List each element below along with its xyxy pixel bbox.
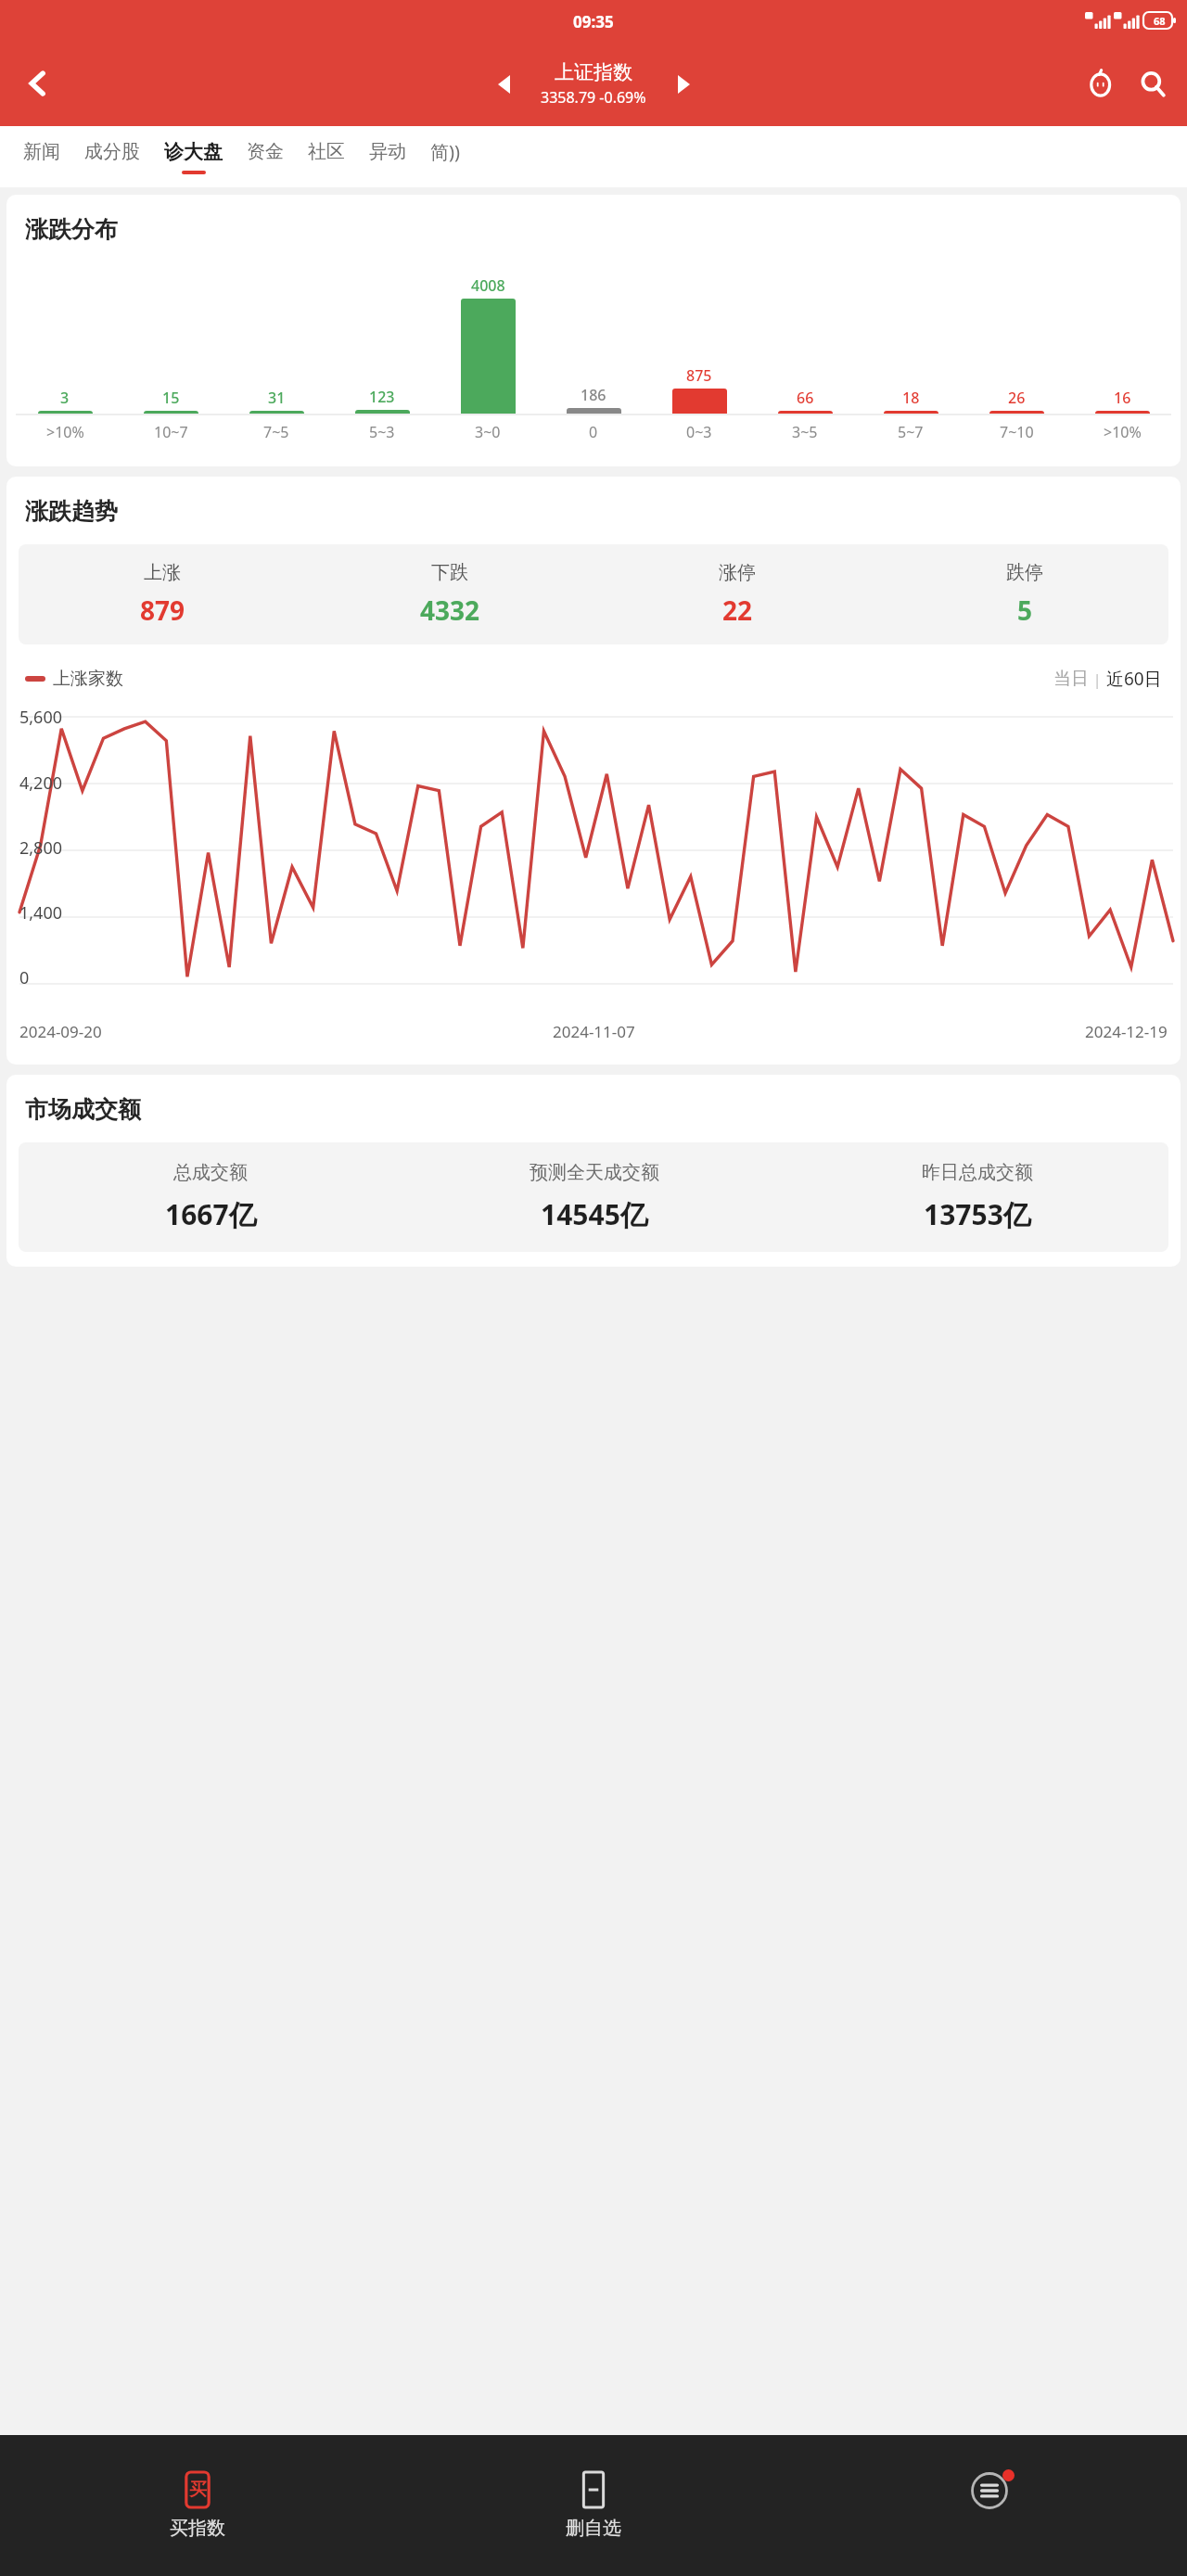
staticText: 社区 bbox=[308, 140, 345, 163]
staticText: >10% bbox=[1104, 422, 1142, 442]
staticText: 市场成交额 bbox=[25, 1095, 141, 1124]
button[interactable]: 新闻 bbox=[23, 126, 60, 187]
staticText: 预测全天成交额 bbox=[530, 1161, 659, 1184]
staticText: 4,200 bbox=[19, 772, 63, 795]
staticText: | bbox=[1089, 669, 1106, 690]
staticText: 上证指数 bbox=[555, 60, 632, 84]
staticText: 近60日 bbox=[1106, 667, 1162, 691]
staticText: 涨停 bbox=[719, 561, 756, 584]
staticText: 3 bbox=[60, 388, 70, 408]
staticText: 成分股 bbox=[84, 140, 140, 163]
button[interactable]: More bbox=[791, 2435, 1187, 2576]
staticText: 2024-11-07 bbox=[553, 1021, 635, 1042]
staticText: 22 bbox=[722, 593, 753, 628]
button[interactable]: 涨停 bbox=[593, 561, 881, 628]
button[interactable]: 上涨 bbox=[19, 561, 306, 628]
staticText: 14545亿 bbox=[541, 1195, 648, 1233]
button[interactable]: 异动 bbox=[369, 126, 406, 187]
staticText: 5,600 bbox=[19, 706, 63, 729]
button[interactable]: 资金 bbox=[247, 126, 284, 187]
button[interactable]: 删自选 bbox=[395, 2435, 791, 2576]
staticText: 涨跌分布 bbox=[25, 215, 118, 244]
staticText: 买指数 bbox=[170, 2517, 225, 2540]
staticText: 异动 bbox=[369, 140, 406, 163]
button[interactable]: 买指数 bbox=[0, 2435, 395, 2576]
staticText: 0 bbox=[589, 422, 598, 442]
staticText: 1667亿 bbox=[165, 1195, 257, 1233]
staticText: >10% bbox=[46, 422, 84, 442]
button[interactable]: 近60日 bbox=[1106, 667, 1162, 691]
staticText: 0~3 bbox=[686, 422, 712, 442]
staticText: 09:35 bbox=[573, 11, 614, 32]
staticText: 昨日总成交额 bbox=[922, 1161, 1033, 1184]
staticText: 上涨家数 bbox=[53, 668, 123, 690]
button[interactable]: Search bbox=[1130, 60, 1176, 107]
staticText: 诊大盘 bbox=[164, 140, 223, 164]
staticText: 跌停 bbox=[1006, 561, 1043, 584]
staticText: 4332 bbox=[420, 593, 480, 628]
button[interactable]: 简)) bbox=[430, 126, 460, 187]
staticText: 10~7 bbox=[154, 422, 188, 442]
staticText: 5 bbox=[1017, 593, 1033, 628]
button[interactable]: 成分股 bbox=[84, 126, 140, 187]
staticText: 879 bbox=[140, 593, 185, 628]
staticText: 资金 bbox=[247, 140, 284, 163]
staticText: 3~5 bbox=[792, 422, 818, 442]
button[interactable]: 跌停 bbox=[881, 561, 1168, 628]
staticText: 下跌 bbox=[431, 561, 468, 584]
staticText: 66 bbox=[797, 388, 814, 408]
staticText: 买 bbox=[189, 2479, 207, 2501]
button[interactable]: 当日 bbox=[1053, 668, 1089, 690]
staticText: 删自选 bbox=[566, 2517, 621, 2540]
staticText: 7~10 bbox=[1000, 422, 1034, 442]
button[interactable]: 社区 bbox=[308, 126, 345, 187]
staticText: 875 bbox=[686, 365, 712, 386]
staticText: 4008 bbox=[471, 275, 505, 296]
staticText: 16 bbox=[1114, 388, 1131, 408]
button[interactable]: Previous bbox=[483, 64, 524, 105]
button[interactable]: 预测全天成交额 bbox=[402, 1161, 785, 1233]
staticText: 7~5 bbox=[263, 422, 289, 442]
staticText: 简)) bbox=[430, 139, 460, 164]
button[interactable]: 诊大盘 bbox=[164, 126, 223, 187]
staticText: 新闻 bbox=[23, 140, 60, 163]
staticText: 18 bbox=[902, 388, 920, 408]
staticText: 15 bbox=[162, 388, 180, 408]
staticText: 123 bbox=[369, 387, 395, 407]
staticText: 31 bbox=[268, 388, 286, 408]
button[interactable]: Assistant bbox=[1078, 60, 1124, 107]
staticText: 3358.79 -0.69% bbox=[541, 87, 646, 108]
staticText: 0 bbox=[19, 966, 30, 989]
staticText: 13753亿 bbox=[924, 1195, 1031, 1233]
button[interactable]: Next bbox=[663, 64, 704, 105]
button[interactable]: Back bbox=[13, 58, 63, 108]
staticText: 5~7 bbox=[898, 422, 924, 442]
staticText: 3~0 bbox=[475, 422, 501, 442]
staticText: 5~3 bbox=[369, 422, 395, 442]
staticText: 2,800 bbox=[19, 836, 63, 860]
staticText: 26 bbox=[1008, 388, 1026, 408]
staticText: 2024-09-20 bbox=[19, 1021, 102, 1042]
button[interactable]: 总成交额 bbox=[19, 1161, 402, 1233]
button[interactable]: 昨日总成交额 bbox=[785, 1161, 1168, 1233]
staticText: 1,400 bbox=[19, 901, 63, 925]
staticText: 上涨 bbox=[144, 561, 181, 584]
staticText: 当日 bbox=[1053, 668, 1089, 690]
button[interactable]: 下跌 bbox=[306, 561, 593, 628]
staticText: 2024-12-19 bbox=[1085, 1021, 1168, 1042]
staticText: 68 bbox=[1154, 14, 1166, 28]
staticText: 186 bbox=[581, 385, 606, 405]
staticText: 总成交额 bbox=[173, 1161, 248, 1184]
staticText: 涨跌趋势 bbox=[25, 497, 118, 526]
